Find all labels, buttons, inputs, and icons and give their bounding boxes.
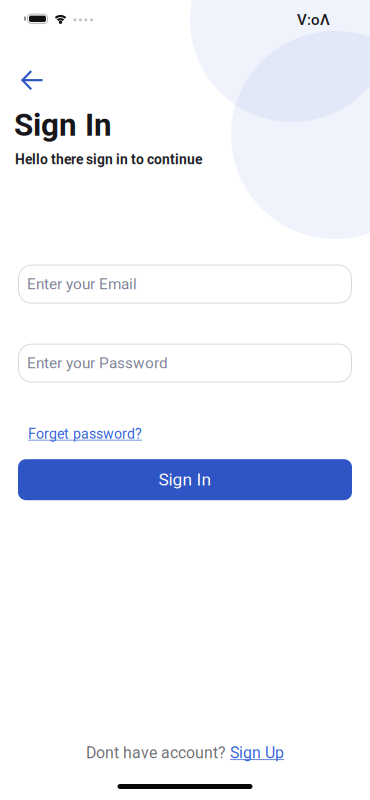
button[interactable]: Enter your Email (18, 265, 352, 304)
staticText: Sign Up (230, 743, 284, 762)
button[interactable]: Enter your Password (18, 344, 352, 383)
staticText: Sign In (158, 469, 211, 490)
staticText: Sign In (14, 107, 112, 143)
staticText: Hello there sign in to continue (15, 151, 202, 168)
button[interactable]: Sign Up (230, 743, 284, 762)
staticText: Enter your Password (27, 354, 168, 372)
staticText: Dont have account? (86, 743, 230, 762)
button[interactable]: Forget password? (28, 426, 142, 442)
button[interactable] (21, 70, 44, 91)
button[interactable]: Sign In (18, 459, 352, 500)
staticText: Forget password? (28, 426, 142, 442)
staticText: V:oΛ (297, 11, 330, 29)
staticText: Enter your Email (27, 275, 137, 293)
